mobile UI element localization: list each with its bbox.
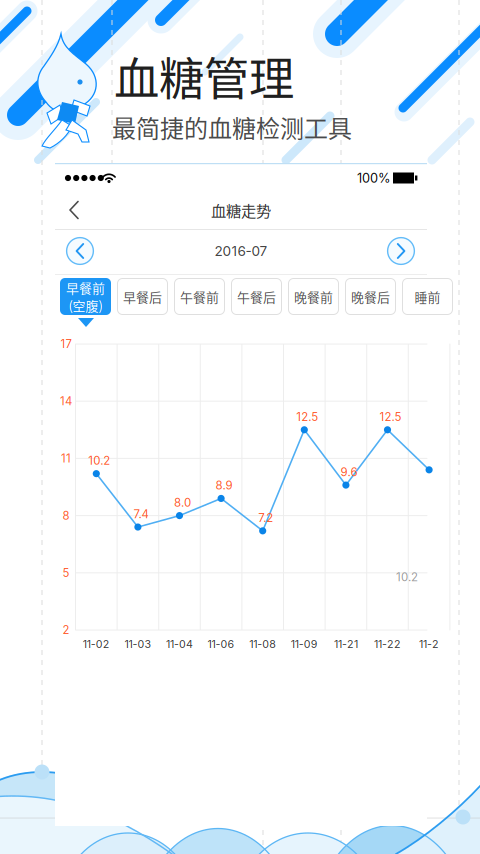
staticText: 2016-07: [214, 243, 267, 259]
button[interactable]: 早餐前: [60, 278, 111, 315]
staticText: 晚餐前: [294, 287, 333, 306]
button[interactable]: 晚餐后: [345, 278, 396, 315]
staticText: 睡前: [414, 287, 440, 306]
staticText: 血糖管理: [114, 43, 294, 109]
staticText: 5: [62, 566, 69, 580]
staticText: 9.6: [340, 465, 357, 479]
staticText: 最简捷的血糖检测工具: [112, 110, 352, 144]
staticText: 11-03: [124, 637, 151, 650]
staticText: 12.5: [296, 410, 318, 424]
button[interactable]: 早餐后: [117, 278, 168, 315]
staticText: 8: [62, 509, 69, 522]
staticText: 100%: [357, 170, 391, 186]
staticText: 8.0: [174, 496, 191, 510]
staticText: 午餐前: [180, 287, 219, 306]
staticText: 晚餐后: [351, 287, 390, 306]
staticText: (空腹): [68, 296, 102, 315]
staticText: 11-09: [291, 637, 318, 650]
staticText: 11-21: [334, 637, 358, 650]
staticText: 8.9: [216, 478, 233, 492]
button[interactable]: 午餐前: [174, 278, 225, 315]
staticText: 早餐后: [123, 287, 162, 306]
button[interactable]: 晚餐前: [288, 278, 339, 315]
staticText: 7.4: [133, 507, 148, 521]
staticText: 10.2: [396, 570, 418, 584]
button[interactable]: 午餐后: [231, 278, 282, 315]
staticText: 10.2: [88, 454, 110, 468]
staticText: 11-02: [83, 637, 110, 650]
staticText: 11-04: [166, 637, 193, 650]
staticText: 14: [60, 394, 72, 408]
staticText: 7.2: [258, 511, 273, 525]
staticText: 11-08: [249, 637, 276, 650]
staticText: 2: [62, 623, 69, 637]
staticText: 血糖走势: [211, 199, 271, 221]
staticText: 17: [60, 337, 71, 351]
staticText: 11-22: [374, 637, 401, 650]
staticText: 11-2: [419, 637, 439, 650]
staticText: 午餐后: [237, 287, 276, 306]
button[interactable]: Back: [54, 191, 94, 229]
button[interactable]: Next month: [382, 232, 420, 270]
staticText: 11-06: [208, 637, 235, 650]
staticText: 早餐前: [66, 278, 105, 297]
button[interactable]: 睡前: [402, 278, 453, 315]
staticText: 11: [61, 451, 71, 465]
staticText: 12.5: [379, 410, 401, 424]
button[interactable]: Previous month: [61, 232, 99, 270]
